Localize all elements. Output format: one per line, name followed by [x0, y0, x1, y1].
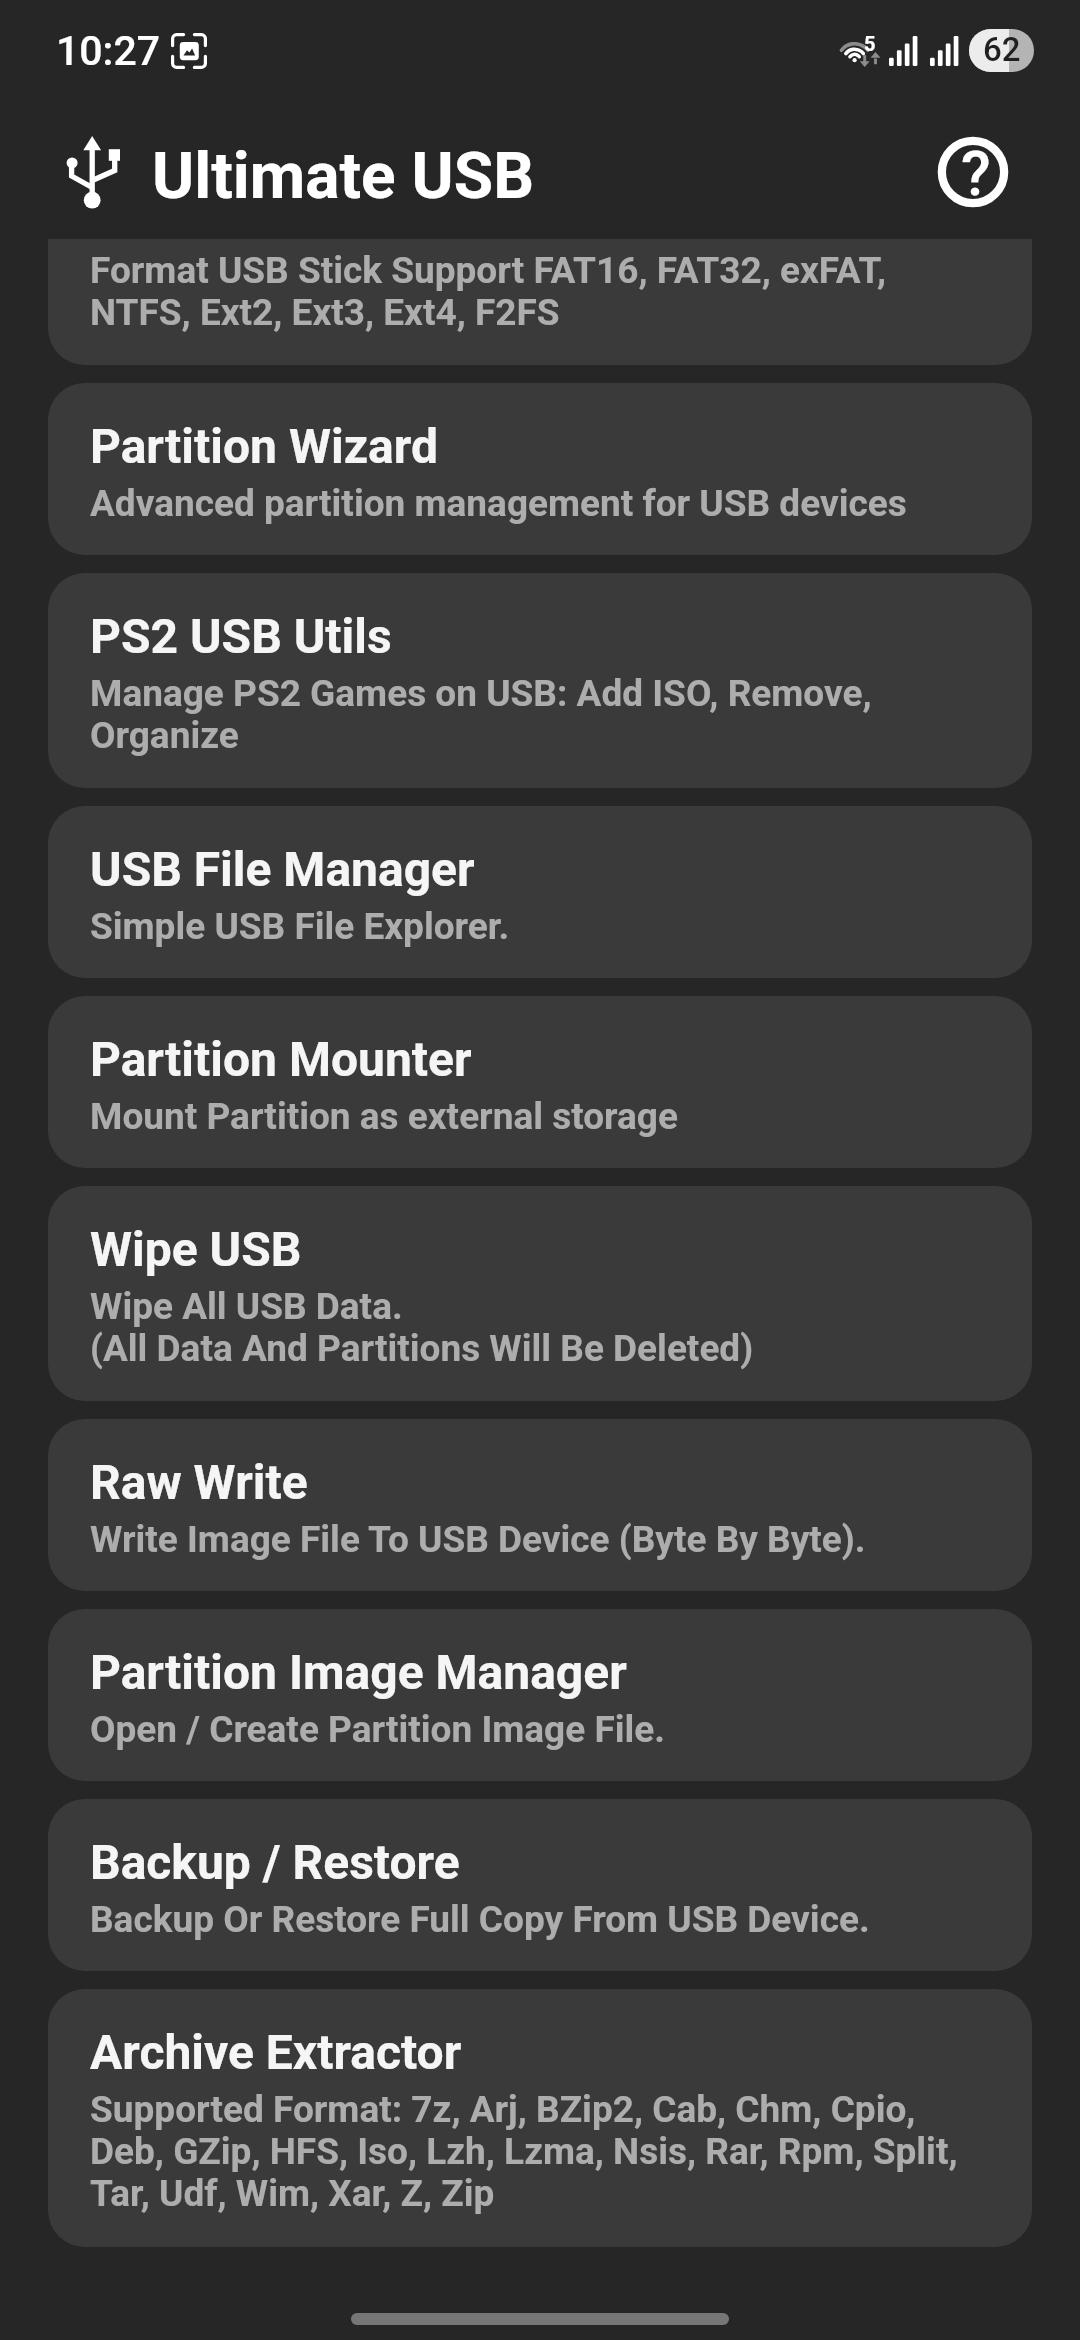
button[interactable]: Partition Wizard [48, 383, 1032, 555]
staticText: Simple USB File Explorer. [90, 905, 510, 948]
button[interactable]: Wipe USB [48, 1186, 1032, 1401]
staticText: USB File Manager [90, 841, 475, 897]
button[interactable]: Partition Mounter [48, 996, 1032, 1168]
staticText: Wipe USB [90, 1221, 302, 1277]
staticText: 5 [864, 32, 876, 55]
staticText: Ultimate USB [152, 139, 534, 214]
staticText: 62 [983, 30, 1021, 69]
staticText: Deb, GZip, HFS, Iso, Lzh, Lzma, Nsis, Ra… [90, 2130, 958, 2173]
staticText: Raw Write [90, 1454, 308, 1510]
staticText: (All Data And Partitions Will Be Deleted… [90, 1327, 754, 1370]
button[interactable]: Format USB [48, 239, 1032, 365]
staticText: PS2 USB Utils [90, 608, 392, 664]
staticText: Partition Image Manager [90, 1644, 627, 1700]
staticText: ? [961, 138, 991, 209]
staticText: Tar, Udf, Wim, Xar, Z, Zip [90, 2172, 495, 2215]
staticText: Write Image File To USB Device (Byte By … [90, 1518, 866, 1561]
button[interactable]: Backup / Restore [48, 1799, 1032, 1971]
staticText: Backup Or Restore Full Copy From USB Dev… [90, 1898, 870, 1941]
button[interactable]: Raw Write [48, 1419, 1032, 1591]
button[interactable]: Partition Image Manager [48, 1609, 1032, 1781]
staticText: Partition Wizard [90, 418, 438, 474]
staticText: 10:27 [56, 27, 161, 75]
staticText: Partition Mounter [90, 1031, 472, 1087]
button[interactable]: PS2 USB Utils [48, 573, 1032, 788]
staticText: Advanced partition management for USB de… [90, 482, 907, 525]
staticText: Organize [90, 714, 239, 757]
staticText: Supported Format: 7z, Arj, BZip2, Cab, C… [90, 2088, 916, 2131]
staticText: Wipe All USB Data. [90, 1285, 403, 1328]
staticText: Archive Extractor [90, 2024, 462, 2080]
button[interactable]: USB File Manager [48, 806, 1032, 978]
staticText: Open / Create Partition Image File. [90, 1708, 665, 1751]
staticText: Mount Partition as external storage [90, 1095, 678, 1138]
staticText: Manage PS2 Games on USB: Add ISO, Remove… [90, 672, 872, 715]
button[interactable]: Archive Extractor [48, 1989, 1032, 2247]
staticText: NTFS, Ext2, Ext3, Ext4, F2FS [90, 291, 560, 334]
button[interactable]: Help [925, 124, 1021, 220]
staticText: Format USB Stick Support FAT16, FAT32, e… [90, 249, 887, 292]
staticText: Backup / Restore [90, 1834, 460, 1890]
